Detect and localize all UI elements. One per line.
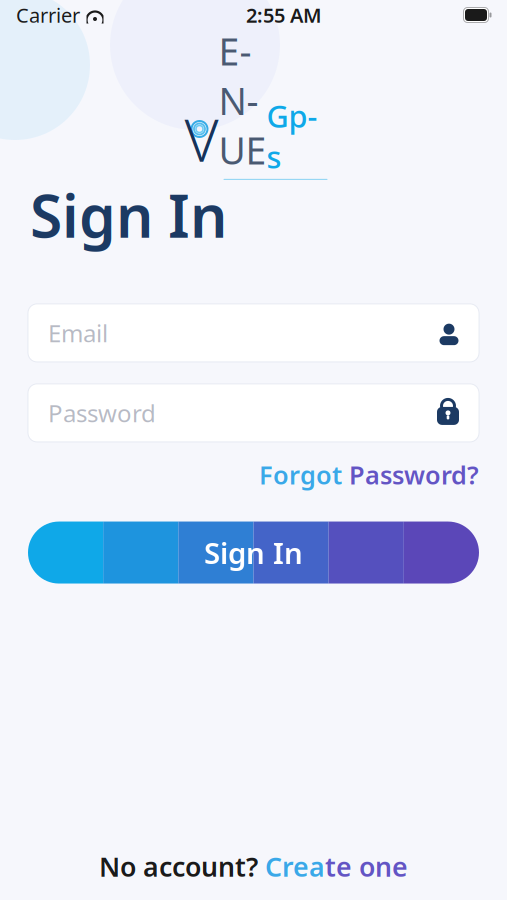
staticText: te one (325, 849, 408, 884)
staticText: No account? (99, 849, 265, 884)
staticText: Crea (265, 849, 325, 884)
staticText: Sign In (30, 176, 227, 254)
button[interactable]: Sign In (28, 521, 479, 583)
staticText: 2:55 AM (246, 2, 322, 28)
staticText: Email (48, 317, 108, 349)
staticText: V (184, 100, 218, 178)
staticText: Password? (349, 458, 479, 491)
staticText: ENUE (218, 26, 266, 175)
button[interactable]: Forgot (259, 452, 479, 497)
staticText: Forgot (259, 458, 349, 491)
staticText: Gps (266, 95, 317, 177)
button[interactable]: No account? (99, 849, 408, 884)
staticText: Sign In (204, 533, 303, 572)
staticText: Password (48, 397, 156, 429)
staticText: Carrier (16, 2, 80, 28)
